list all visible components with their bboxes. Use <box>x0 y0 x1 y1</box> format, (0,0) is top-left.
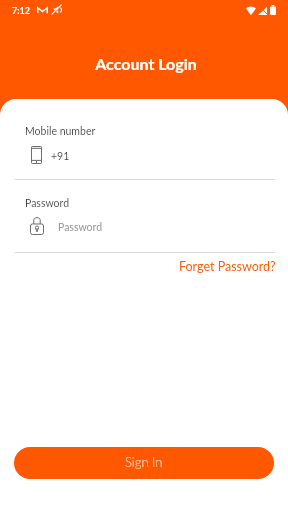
staticText: 7:12 <box>12 5 30 16</box>
staticText: +91 <box>51 150 70 163</box>
staticText: Password <box>25 197 70 210</box>
staticText: Sign In <box>125 454 163 470</box>
staticText: Account Login <box>2 54 288 73</box>
staticText: Mobile number <box>25 125 96 138</box>
staticText: Password <box>58 221 103 234</box>
button[interactable]: +91 <box>0 147 288 165</box>
button[interactable]: Sign In <box>14 447 274 479</box>
button[interactable]: Password <box>0 218 288 237</box>
button[interactable]: Forget Password? <box>167 255 288 278</box>
